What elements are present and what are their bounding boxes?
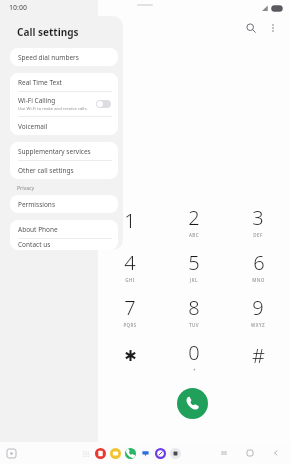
- button[interactable]: Contact us: [10, 239, 118, 250]
- button[interactable]: Speed dial numbers: [10, 48, 118, 66]
- staticText: Contact us: [18, 240, 51, 249]
- button[interactable]: 9: [226, 288, 290, 333]
- staticText: 8: [188, 294, 200, 321]
- staticText: +: [193, 367, 196, 373]
- button[interactable]: ✱: [98, 333, 162, 378]
- staticText: 9: [252, 294, 264, 321]
- staticText: DEF: [253, 232, 263, 238]
- button[interactable]: Phone: [125, 448, 136, 459]
- staticText: JKL: [190, 277, 198, 283]
- button[interactable]: All apps: [81, 449, 91, 459]
- staticText: 2: [188, 204, 200, 231]
- button[interactable]: Browser: [155, 448, 166, 459]
- button[interactable]: Gallery: [95, 448, 106, 459]
- staticText: Voicemail: [18, 122, 48, 131]
- button[interactable]: 4: [98, 243, 162, 288]
- button[interactable]: 2: [162, 198, 226, 243]
- button[interactable]: 6: [226, 243, 290, 288]
- staticText: Supplementary services: [18, 147, 91, 156]
- staticText: PQRS: [123, 322, 137, 328]
- staticText: Speed dial numbers: [18, 53, 79, 62]
- staticText: Other call settings: [18, 166, 74, 175]
- staticText: Call settings: [17, 25, 79, 39]
- staticText: GHI: [125, 277, 135, 283]
- button[interactable]: Recents: [218, 447, 230, 459]
- staticText: TUV: [189, 322, 199, 328]
- button[interactable]: More options: [263, 18, 283, 38]
- button[interactable]: 8: [162, 288, 226, 333]
- button[interactable]: Wi-Fi Calling toggle: [96, 100, 111, 108]
- button[interactable]: 7: [98, 288, 162, 333]
- staticText: 4: [124, 249, 136, 276]
- staticText: 0: [188, 339, 200, 366]
- staticText: Privacy: [17, 185, 35, 192]
- staticText: 6: [253, 249, 265, 276]
- button[interactable]: Files: [110, 448, 121, 459]
- staticText: 3: [252, 204, 264, 231]
- staticText: Permissions: [18, 200, 56, 209]
- staticText: About Phone: [18, 225, 58, 234]
- button[interactable]: About Phone: [10, 220, 118, 238]
- button[interactable]: Other call settings: [10, 161, 118, 179]
- button[interactable]: 1: [98, 198, 162, 243]
- button[interactable]: Home: [244, 447, 256, 459]
- button[interactable]: Voicemail: [10, 117, 118, 135]
- button[interactable]: 0: [162, 333, 226, 378]
- staticText: 10:00: [9, 3, 27, 13]
- staticText: 7: [124, 294, 136, 321]
- staticText: Real Time Text: [18, 78, 62, 87]
- button[interactable]: Messages: [140, 448, 151, 459]
- button[interactable]: Call: [177, 388, 208, 419]
- staticText: Use Wi-Fi to make and receive calls.: [18, 106, 88, 112]
- staticText: MNO: [252, 277, 265, 283]
- button[interactable]: Real Time Text: [10, 73, 118, 91]
- staticText: ABC: [189, 232, 199, 238]
- button[interactable]: #: [226, 333, 290, 378]
- staticText: WXYZ: [251, 322, 265, 328]
- button[interactable]: Wi-Fi Calling: [10, 92, 118, 116]
- staticText: #: [252, 342, 265, 369]
- button[interactable]: Back: [270, 447, 282, 459]
- button[interactable]: Supplementary services: [10, 142, 118, 160]
- button[interactable]: 3: [226, 198, 290, 243]
- staticText: ✱: [124, 347, 137, 364]
- button[interactable]: Permissions: [10, 195, 118, 213]
- button[interactable]: Recent app: [7, 449, 16, 458]
- staticText: 5: [188, 249, 200, 276]
- button[interactable]: Search: [241, 18, 261, 38]
- staticText: 1: [124, 207, 136, 234]
- button[interactable]: Settings: [170, 448, 181, 459]
- staticText: Wi-Fi Calling: [18, 96, 56, 105]
- button[interactable]: 5: [162, 243, 226, 288]
